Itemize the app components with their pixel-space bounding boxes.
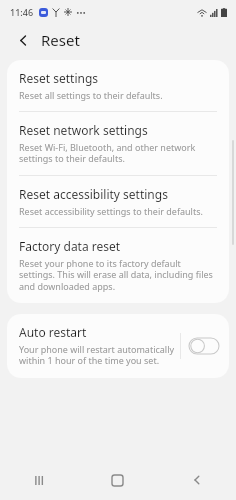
button[interactable]: Home [78,460,157,500]
staticText: Your phone will restart automatically wi… [19,343,180,367]
staticText: Reset settings [19,70,99,86]
button[interactable]: Recents [0,460,78,500]
button[interactable]: Reset network settings [7,112,229,175]
staticText: Reset Wi-Fi, Bluetooth, and other networ… [19,141,215,165]
staticText: Reset network settings [19,122,148,138]
button[interactable]: Factory data reset [7,228,229,303]
staticText: Auto restart [19,324,87,340]
staticText: 11:46 [10,6,34,18]
staticText: Factory data reset [19,238,121,254]
staticText: Reset your phone to its factory default … [19,257,215,293]
staticText: Reset accessibility settings to their de… [19,205,203,217]
button[interactable]: Reset settings [7,60,229,111]
button[interactable]: Back [10,27,36,53]
button[interactable]: Auto restart toggle [189,338,219,354]
button[interactable]: Back [157,460,236,500]
staticText: Reset accessibility settings [19,186,168,202]
button[interactable]: Auto restart [7,314,229,378]
button[interactable]: Reset accessibility settings [7,176,229,227]
staticText: Reset all settings to their defaults. [19,89,163,101]
staticText: Reset [41,30,80,50]
